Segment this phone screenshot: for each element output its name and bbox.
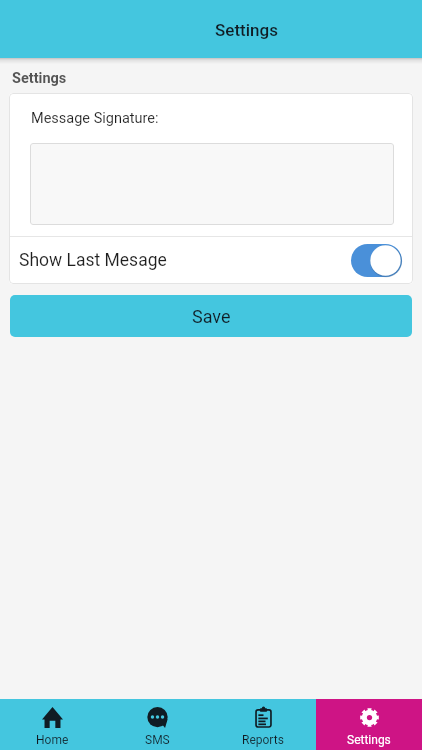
staticText: Settings <box>215 20 278 40</box>
button[interactable]: Save <box>10 295 412 337</box>
button[interactable]: Home <box>0 699 105 750</box>
button[interactable]: Message signature input <box>30 143 394 225</box>
staticText: SMS <box>145 733 170 747</box>
button[interactable]: Show Last Mesage <box>9 237 413 284</box>
staticText: Show Last Mesage <box>19 250 167 271</box>
button[interactable]: Reports <box>210 699 316 750</box>
staticText: Save <box>192 306 231 327</box>
button[interactable]: Settings <box>316 699 422 750</box>
button[interactable]: SMS <box>105 699 210 750</box>
staticText: Reports <box>242 733 284 747</box>
staticText: Settings <box>347 733 391 747</box>
staticText: Message Signature: <box>31 110 159 127</box>
button[interactable]: Show Last Message toggle <box>351 244 402 277</box>
staticText: Home <box>36 733 69 747</box>
staticText: Settings <box>12 70 67 87</box>
